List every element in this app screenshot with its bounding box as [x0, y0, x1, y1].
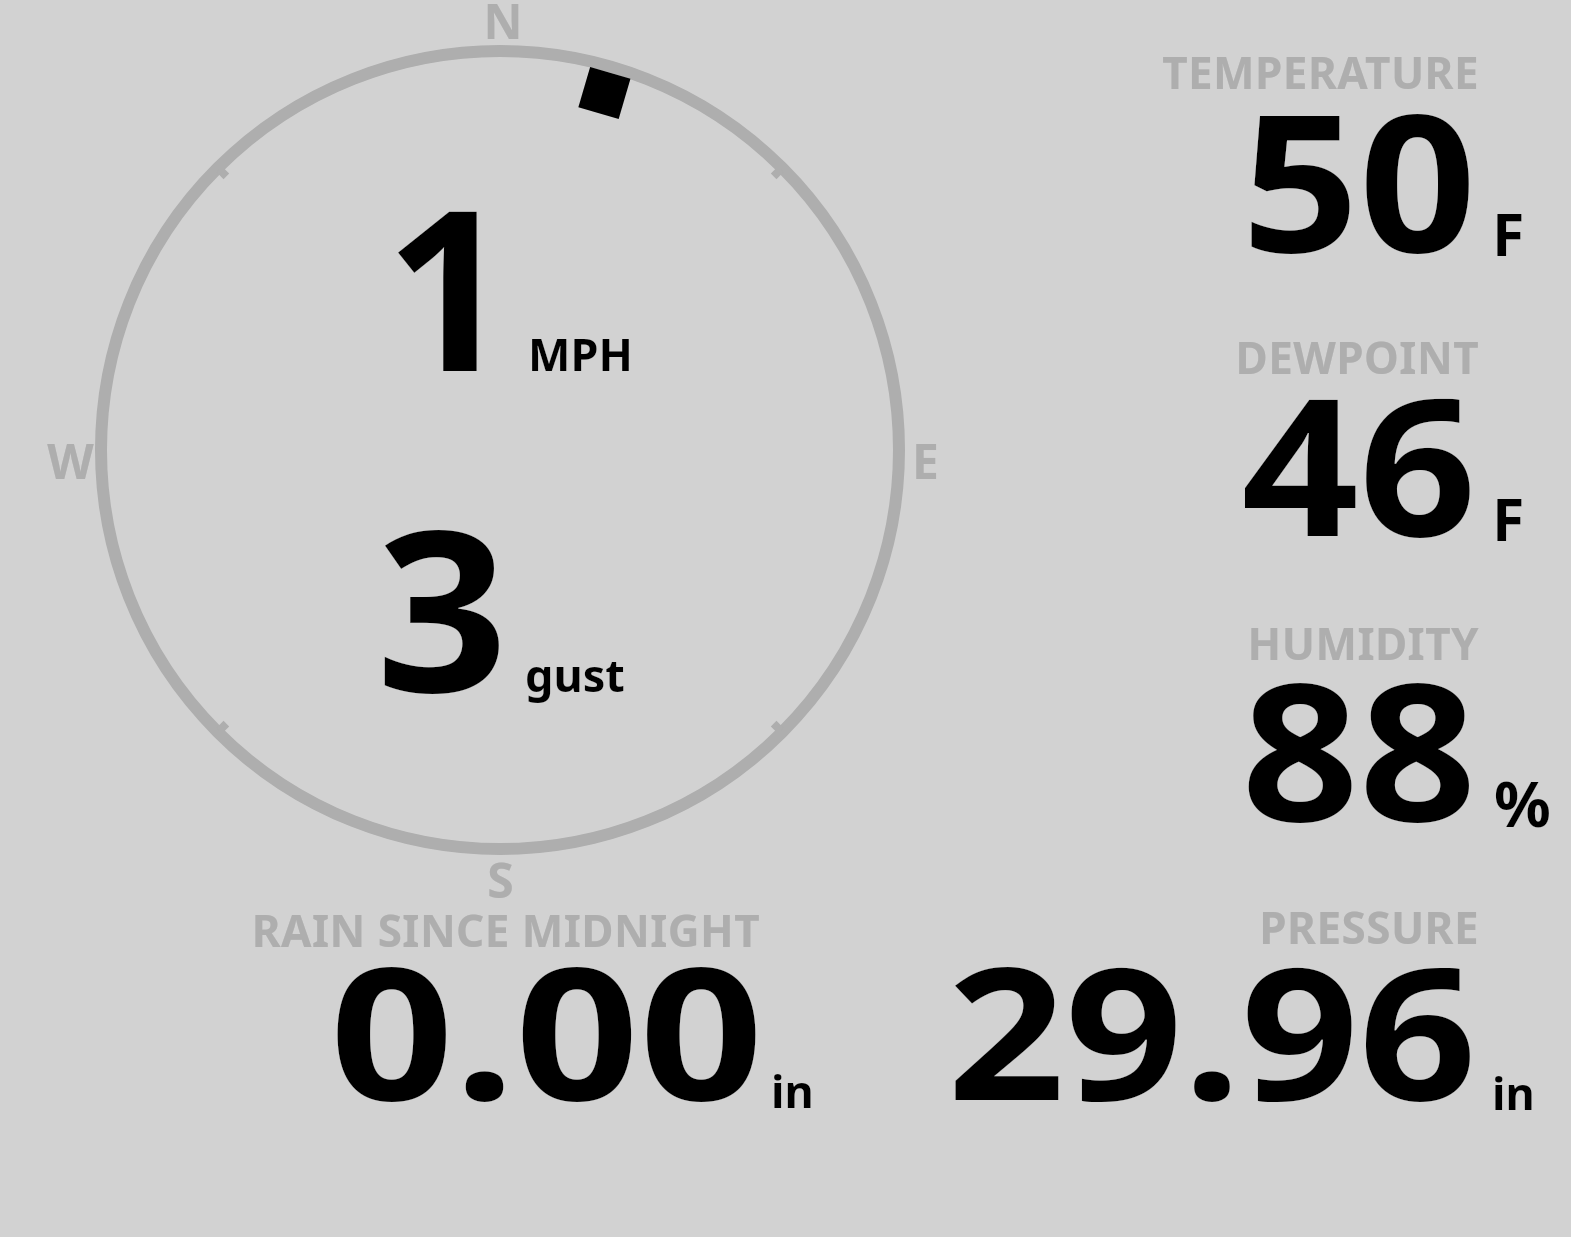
- button[interactable]: Wind direction compass, wind from north-…: [60, 0, 940, 900]
- staticText: TEMPERATURE: [1162, 42, 1479, 102]
- button[interactable]: Wind speed 1 MPH: [380, 200, 650, 385]
- button[interactable]: PRESSURE: [779, 897, 1479, 1147]
- staticText: PRESSURE: [1259, 897, 1479, 957]
- staticText: S: [487, 847, 514, 903]
- button[interactable]: RAIN SINCE MIDNIGHT: [60, 900, 760, 1150]
- button[interactable]: HUMIDITY: [779, 613, 1479, 863]
- staticText: 29.96: [947, 903, 1477, 1154]
- staticText: 0.00: [330, 903, 764, 1154]
- staticText: E: [912, 428, 939, 484]
- staticText: in: [771, 1060, 814, 1121]
- button[interactable]: DEWPOINT: [779, 327, 1479, 577]
- staticText: HUMIDITY: [1247, 613, 1479, 673]
- staticText: 50: [1242, 49, 1477, 308]
- staticText: gust: [525, 644, 625, 705]
- button[interactable]: Wind gust 3 MPH: [370, 518, 640, 708]
- staticText: 46: [1242, 333, 1477, 592]
- staticText: F: [1492, 193, 1525, 273]
- staticText: RAIN SINCE MIDNIGHT: [251, 900, 760, 960]
- staticText: F: [1492, 478, 1525, 558]
- staticText: DEWPOINT: [1235, 327, 1479, 387]
- staticText: MPH: [528, 323, 633, 384]
- staticText: 88: [1242, 618, 1477, 877]
- button[interactable]: TEMPERATURE: [779, 42, 1479, 292]
- staticText: W: [47, 428, 94, 484]
- staticText: 3: [376, 455, 508, 757]
- staticText: %: [1494, 760, 1551, 846]
- staticText: in: [1492, 1062, 1535, 1123]
- staticText: 1: [385, 134, 512, 436]
- staticText: N: [483, 0, 523, 44]
